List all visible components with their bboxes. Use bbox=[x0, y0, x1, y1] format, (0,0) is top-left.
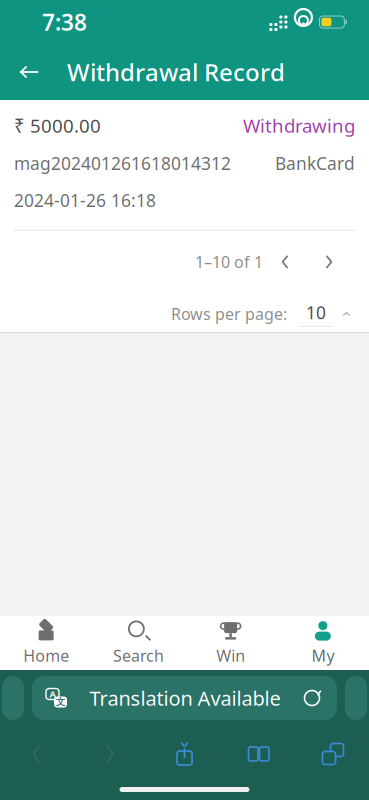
button[interactable]: Home bbox=[0, 616, 92, 670]
staticText: Rows per page: bbox=[171, 303, 287, 324]
button[interactable]: Win bbox=[184, 616, 277, 670]
button[interactable]: A bbox=[32, 676, 337, 720]
staticText: Home bbox=[23, 645, 69, 666]
button[interactable]: Search bbox=[92, 616, 184, 670]
staticText: 1–10 of 1 bbox=[195, 251, 263, 272]
staticText: A bbox=[49, 688, 55, 700]
button[interactable]: Bookmarks bbox=[231, 734, 287, 774]
staticText: BankCard bbox=[275, 152, 355, 175]
staticText: 7:38 bbox=[42, 7, 87, 37]
staticText: mag202401261618014312 bbox=[14, 152, 231, 175]
button[interactable]: Next page bbox=[307, 245, 351, 279]
staticText: Withdrawal Record bbox=[67, 56, 285, 88]
staticText: 2024-01-26 16:18 bbox=[14, 189, 156, 212]
staticText: My bbox=[311, 645, 334, 666]
staticText: Withdrawing bbox=[243, 113, 355, 138]
staticText: Win bbox=[216, 645, 245, 666]
button[interactable]: Share bbox=[156, 734, 212, 774]
button[interactable]: My bbox=[277, 616, 369, 670]
staticText: ₹ 5000.00 bbox=[14, 113, 101, 138]
staticText: 10 bbox=[306, 301, 326, 324]
staticText: 文 bbox=[56, 696, 65, 708]
staticText: Translation Available bbox=[89, 685, 280, 711]
staticText: Search bbox=[113, 645, 164, 666]
button[interactable]: Tabs bbox=[305, 734, 361, 774]
button[interactable]: Rows per page, 10 bbox=[287, 295, 351, 333]
button[interactable]: Back bbox=[9, 50, 49, 94]
button[interactable]: Previous page bbox=[263, 245, 307, 279]
